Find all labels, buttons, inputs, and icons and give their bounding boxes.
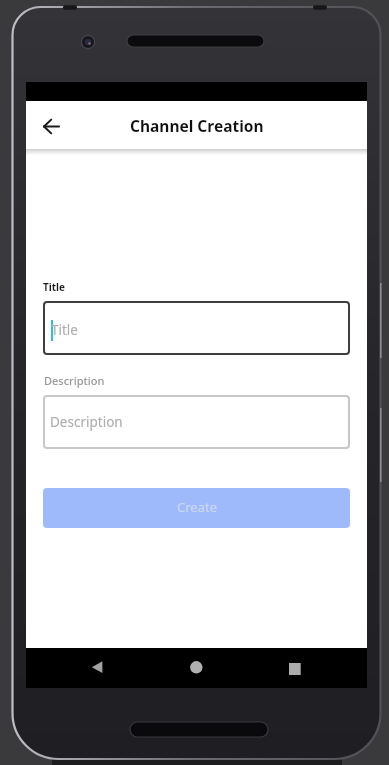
button[interactable]: Title — [43, 301, 350, 355]
staticText: Description — [44, 373, 105, 388]
staticText: Title — [51, 321, 78, 339]
button[interactable] — [172, 648, 220, 688]
staticText: Description — [50, 413, 123, 431]
staticText: Title — [43, 280, 66, 294]
staticText: Channel Creation — [130, 115, 264, 136]
button[interactable] — [73, 648, 121, 688]
button[interactable] — [271, 648, 319, 688]
button[interactable]: Create — [43, 488, 350, 528]
button[interactable]: Description — [43, 395, 350, 449]
button[interactable] — [37, 112, 65, 140]
staticText: Create — [177, 498, 217, 516]
